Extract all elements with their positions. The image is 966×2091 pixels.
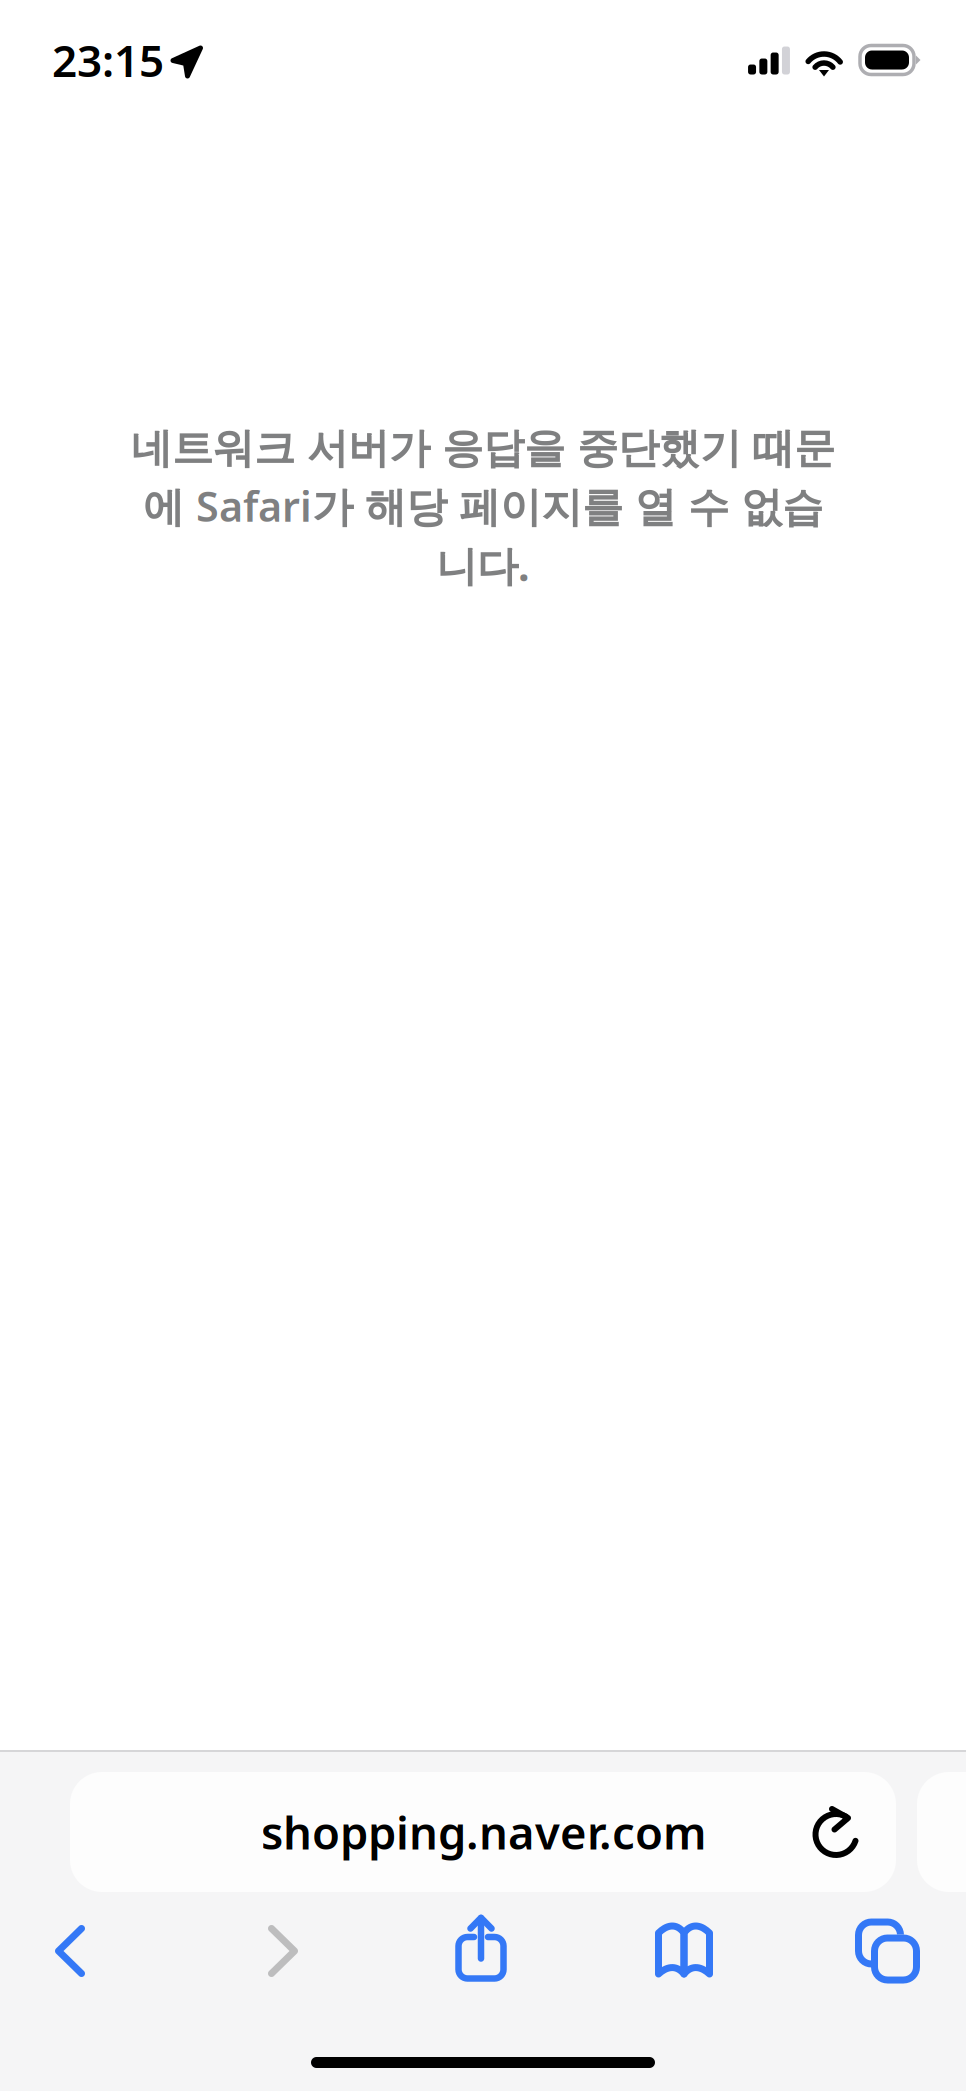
button[interactable]: Share [454,1917,508,1985]
button[interactable]: Tabs [855,1919,919,1983]
button[interactable]: Bookmarks [654,1920,714,1982]
staticText: 에 Safari가 해당 페이지를 열 수 없습 [143,478,823,533]
button[interactable]: Back [54,1924,86,1978]
staticText: 23:15 [52,31,164,89]
staticText: shopping.naver.com [261,1802,707,1862]
staticText: 니다. [436,538,530,593]
staticText: 네트워크 서버가 응답을 중단했기 때문 [131,423,835,474]
button[interactable]: Forward [267,1924,299,1978]
button[interactable]: shopping.naver.com [70,1772,896,1892]
